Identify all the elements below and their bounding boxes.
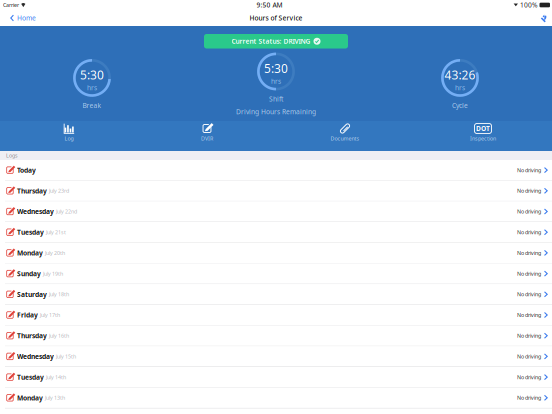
staticText: Monday xyxy=(17,248,43,257)
button[interactable]: Monday xyxy=(0,388,552,408)
button[interactable]: Settings xyxy=(532,10,552,26)
staticText: July 20th xyxy=(45,249,65,256)
button[interactable]: Wednesday xyxy=(0,346,552,367)
staticText: No driving xyxy=(517,332,541,339)
staticText: Thursday xyxy=(17,186,47,195)
button[interactable]: Current Status: DRIVING xyxy=(204,34,348,48)
button[interactable]: Monday xyxy=(0,243,552,263)
staticText: July 22nd xyxy=(56,208,77,215)
staticText: Documents xyxy=(330,135,359,142)
staticText: Tuesday xyxy=(17,228,44,237)
staticText: Saturday xyxy=(17,290,47,299)
staticText: Break xyxy=(82,101,101,110)
button[interactable]: Home xyxy=(0,10,43,26)
staticText: July 14th xyxy=(46,374,66,381)
staticText: Monday xyxy=(17,393,43,402)
button[interactable]: Thursday xyxy=(0,181,552,201)
staticText: July 18th xyxy=(49,291,69,298)
staticText: 43:26 xyxy=(444,67,475,83)
staticText: No driving xyxy=(517,270,541,277)
button[interactable]: Tuesday xyxy=(0,222,552,243)
staticText: Driving Hours Remaining xyxy=(236,107,316,116)
staticText: 5:30 xyxy=(80,67,104,83)
staticText: Wednesday xyxy=(17,352,54,361)
staticText: Cycle xyxy=(452,101,468,110)
staticText: No driving xyxy=(517,187,541,194)
staticText: Today xyxy=(17,166,36,175)
staticText: July 13th xyxy=(45,394,65,401)
staticText: Current Status: DRIVING xyxy=(231,37,310,46)
button[interactable]: DOT xyxy=(414,121,552,151)
staticText: No driving xyxy=(517,229,541,236)
staticText: No driving xyxy=(517,249,541,256)
staticText: hrs xyxy=(87,83,97,92)
staticText: Carrier xyxy=(3,1,19,9)
staticText: July 15th xyxy=(56,353,76,360)
staticText: Friday xyxy=(17,311,38,319)
staticText: hrs xyxy=(271,77,281,86)
staticText: Wednesday xyxy=(17,207,54,216)
staticText: Thursday xyxy=(17,331,47,340)
staticText: Tuesday xyxy=(17,373,44,382)
staticText: Sunday xyxy=(17,269,41,278)
staticText: No driving xyxy=(517,394,541,401)
button[interactable]: Log xyxy=(0,121,138,151)
staticText: 5:30 xyxy=(264,60,288,76)
staticText: No driving xyxy=(517,208,541,215)
button[interactable]: Thursday xyxy=(0,326,552,346)
button[interactable]: Documents xyxy=(276,121,414,151)
button[interactable]: Sunday xyxy=(0,263,552,284)
staticText: No driving xyxy=(517,167,541,174)
staticText: Hours of Service xyxy=(249,14,302,22)
staticText: No driving xyxy=(517,374,541,381)
staticText: No driving xyxy=(517,291,541,298)
staticText: July 21st xyxy=(46,229,66,236)
staticText: Log xyxy=(64,135,73,142)
button[interactable]: Today xyxy=(0,160,552,181)
staticText: 9:50 AM xyxy=(257,1,283,9)
staticText: July 19th xyxy=(43,270,63,277)
staticText: Logs xyxy=(6,152,18,159)
staticText: DOT xyxy=(476,124,490,133)
staticText: No driving xyxy=(517,353,541,360)
staticText: Inspection xyxy=(470,135,496,142)
staticText: 100% xyxy=(520,1,538,9)
staticText: No driving xyxy=(517,311,541,319)
button[interactable]: Tuesday xyxy=(0,367,552,388)
staticText: hrs xyxy=(455,83,465,92)
staticText: DVIR xyxy=(201,135,213,142)
staticText: Shift xyxy=(269,94,283,103)
button[interactable]: Wednesday xyxy=(0,201,552,222)
button[interactable]: Saturday xyxy=(0,284,552,305)
staticText: July 23rd xyxy=(49,187,69,194)
button[interactable]: Friday xyxy=(0,305,552,326)
staticText: July 16th xyxy=(49,332,69,339)
staticText: July 17th xyxy=(40,311,60,319)
button[interactable]: DVIR xyxy=(138,121,276,151)
staticText: Home xyxy=(17,14,36,22)
